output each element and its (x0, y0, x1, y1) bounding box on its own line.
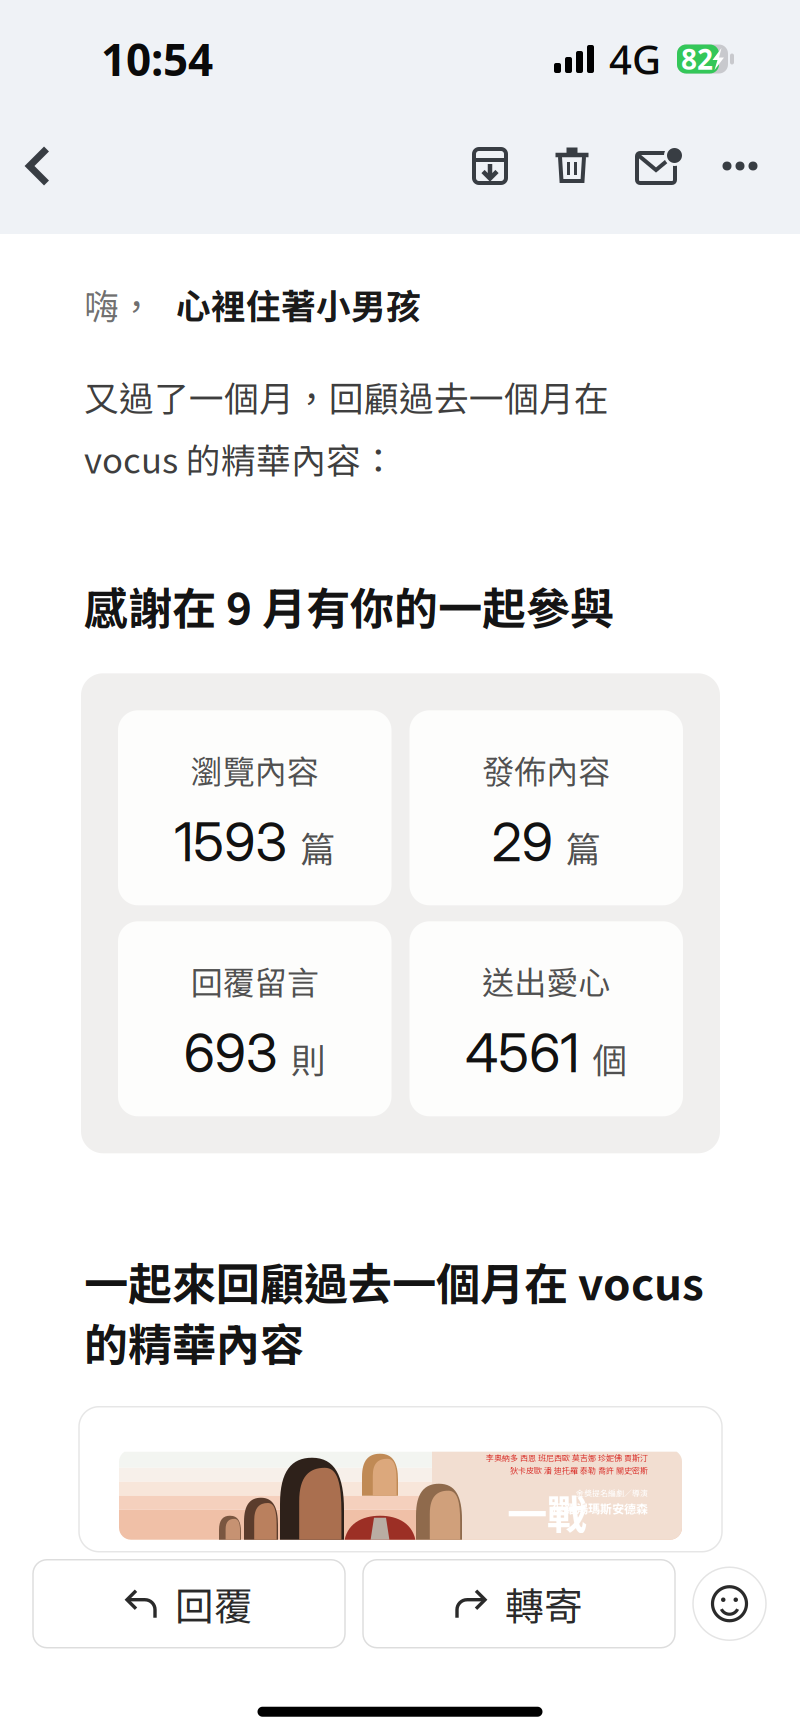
staticText: 嗨， (84, 279, 154, 329)
staticText: 金獎提名編劇／導演 (576, 1487, 648, 1498)
staticText: 心裡住著小男孩 (176, 279, 421, 329)
button[interactable]: 轉寄 (363, 1560, 675, 1648)
staticText: 1593 (174, 810, 287, 874)
staticText: 693 (184, 1021, 278, 1085)
button[interactable]: Add reaction (693, 1567, 766, 1640)
staticText: 轉寄 (505, 1576, 583, 1632)
staticText: 李奧納多 西恩 班尼西歐 莫吉娜 珍妮佛 賈斯汀 (486, 1452, 648, 1463)
staticText: 82 (681, 40, 713, 78)
staticText: 10:54 (101, 30, 213, 88)
staticText: 篇 (300, 822, 335, 872)
button[interactable]: Back (0, 118, 76, 214)
button[interactable]: Delete (530, 118, 614, 214)
staticText: 則 (291, 1033, 326, 1083)
staticText: 一戰 (507, 1483, 587, 1541)
button[interactable]: 回覆 (33, 1560, 345, 1648)
staticText: 4G (609, 32, 661, 85)
staticText: 29 (492, 810, 553, 874)
button[interactable]: Archive (450, 118, 530, 214)
staticText: 一起來回顧過去一個月在 vocus 的精華內容 (84, 1249, 704, 1374)
staticText: 個 (592, 1033, 627, 1083)
staticText: 狄卡皮歐 潘 迪托羅 泰勒 喬許 關史密斯 (510, 1464, 648, 1476)
staticText: 回覆 (175, 1576, 253, 1632)
button[interactable]: More options (698, 118, 782, 214)
staticText: 保羅湯瑪斯安德森 (552, 1499, 648, 1517)
staticText: 4561 (465, 1021, 579, 1085)
staticText: 回覆留言 (191, 957, 319, 1004)
button[interactable]: Mark as unread (614, 118, 698, 214)
staticText: 瀏覽內容 (191, 746, 319, 793)
staticText: 又過了一個月，回顧過去一個月在 (84, 371, 609, 421)
staticText: vocus 的精華內容： (84, 433, 396, 484)
staticText: 篇 (566, 822, 601, 872)
staticText: 送出愛心 (482, 957, 610, 1004)
staticText: 發佈內容 (482, 746, 610, 793)
staticText: 感謝在 9 月有你的一起參與 (84, 574, 614, 637)
